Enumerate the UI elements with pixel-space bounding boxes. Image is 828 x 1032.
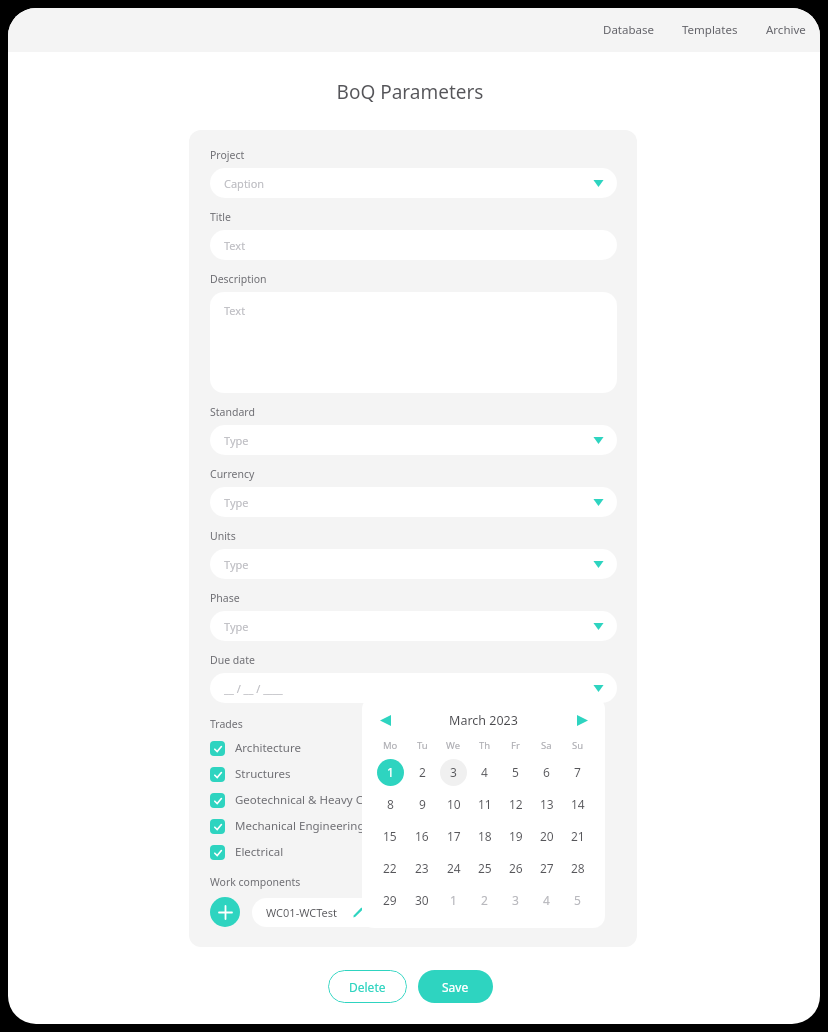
- staticText: 13: [540, 796, 554, 812]
- staticText: Geotechnical & Heavy Civil Engineering: [235, 792, 447, 808]
- button[interactable]: Archive: [752, 14, 820, 46]
- button[interactable]: 17: [438, 820, 469, 852]
- staticText: Architecture: [235, 740, 301, 756]
- button[interactable]: Add work component: [210, 897, 240, 927]
- button[interactable]: 1: [438, 884, 469, 916]
- staticText: Phase: [210, 591, 240, 605]
- staticText: Database: [603, 22, 654, 38]
- staticText: We: [446, 739, 461, 752]
- button[interactable]: 5: [562, 884, 593, 916]
- button[interactable]: 1: [374, 756, 406, 788]
- button[interactable]: Edit: [350, 905, 365, 920]
- button[interactable]: Previous month: [374, 709, 396, 731]
- staticText: Delete: [349, 979, 386, 995]
- staticText: March 2023: [396, 712, 571, 729]
- staticText: Type: [224, 557, 249, 572]
- staticText: Archive: [766, 22, 806, 38]
- button[interactable]: Electrical: [210, 839, 617, 865]
- button[interactable]: __ / __ / ____: [210, 673, 617, 703]
- staticText: 2: [419, 764, 426, 780]
- button[interactable]: 26: [500, 852, 531, 884]
- button[interactable]: 10: [438, 788, 469, 820]
- button[interactable]: 22: [374, 852, 406, 884]
- button[interactable]: WC01-WCTest: [252, 898, 402, 927]
- staticText: 22: [383, 860, 397, 876]
- button[interactable]: Structures: [210, 761, 617, 787]
- button[interactable]: Templates: [668, 14, 752, 46]
- button[interactable]: 29: [374, 884, 406, 916]
- staticText: Fr: [511, 739, 520, 752]
- button[interactable]: 13: [531, 788, 562, 820]
- button[interactable]: 15: [374, 820, 406, 852]
- button[interactable]: 5: [500, 756, 531, 788]
- button[interactable]: 4: [469, 756, 500, 788]
- staticText: 25: [478, 860, 492, 876]
- staticText: Due date: [210, 653, 255, 667]
- button[interactable]: Next month: [571, 709, 593, 731]
- button[interactable]: Delete: [328, 970, 407, 1003]
- button[interactable]: Caption: [210, 168, 617, 198]
- button[interactable]: 2: [469, 884, 500, 916]
- staticText: 29: [383, 892, 397, 908]
- button[interactable]: 23: [406, 852, 438, 884]
- staticText: 18: [478, 828, 492, 844]
- staticText: Mo: [383, 739, 398, 752]
- staticText: Su: [572, 739, 584, 752]
- staticText: 4: [543, 892, 550, 908]
- button[interactable]: 7: [562, 756, 593, 788]
- staticText: 3: [450, 764, 457, 780]
- staticText: Sa: [541, 739, 552, 752]
- staticText: 3: [512, 892, 519, 908]
- button[interactable]: 3: [500, 884, 531, 916]
- button[interactable]: 9: [406, 788, 438, 820]
- button[interactable]: Database: [589, 14, 668, 46]
- staticText: Title: [210, 210, 231, 224]
- staticText: 2: [481, 892, 488, 908]
- staticText: Description: [210, 272, 267, 286]
- button[interactable]: 4: [531, 884, 562, 916]
- staticText: Th: [479, 739, 491, 752]
- button[interactable]: Text: [210, 230, 617, 260]
- button[interactable]: 12: [500, 788, 531, 820]
- staticText: 14: [571, 796, 585, 812]
- button[interactable]: 2: [406, 756, 438, 788]
- staticText: 12: [509, 796, 523, 812]
- staticText: BoQ Parameters: [8, 79, 812, 105]
- button[interactable]: Architecture: [210, 735, 617, 761]
- button[interactable]: Type: [210, 611, 617, 641]
- button[interactable]: 8: [374, 788, 406, 820]
- staticText: 7: [574, 764, 581, 780]
- staticText: 17: [447, 828, 461, 844]
- button[interactable]: 24: [438, 852, 469, 884]
- staticText: Save: [442, 979, 469, 995]
- button[interactable]: 3: [438, 756, 469, 788]
- button[interactable]: 30: [406, 884, 438, 916]
- button[interactable]: 21: [562, 820, 593, 852]
- staticText: Trades: [210, 717, 243, 731]
- staticText: Structures: [235, 766, 291, 782]
- button[interactable]: 19: [500, 820, 531, 852]
- staticText: 6: [543, 764, 550, 780]
- button[interactable]: 20: [531, 820, 562, 852]
- button[interactable]: 16: [406, 820, 438, 852]
- button[interactable]: 27: [531, 852, 562, 884]
- button[interactable]: Geotechnical & Heavy Civil Engineering: [210, 787, 617, 813]
- staticText: 10: [447, 796, 461, 812]
- staticText: WC01-WCTest: [266, 905, 338, 920]
- button[interactable]: Mechanical Engineering & industrial prod…: [210, 813, 617, 839]
- button[interactable]: 28: [562, 852, 593, 884]
- staticText: Text: [224, 238, 246, 253]
- button[interactable]: 6: [531, 756, 562, 788]
- button[interactable]: Save: [418, 970, 493, 1003]
- staticText: Electrical: [235, 844, 284, 860]
- button[interactable]: Type: [210, 487, 617, 517]
- button[interactable]: Type: [210, 549, 617, 579]
- button[interactable]: 11: [469, 788, 500, 820]
- button[interactable]: 25: [469, 852, 500, 884]
- staticText: 27: [540, 860, 554, 876]
- button[interactable]: 18: [469, 820, 500, 852]
- button[interactable]: Type: [210, 425, 617, 455]
- button[interactable]: 14: [562, 788, 593, 820]
